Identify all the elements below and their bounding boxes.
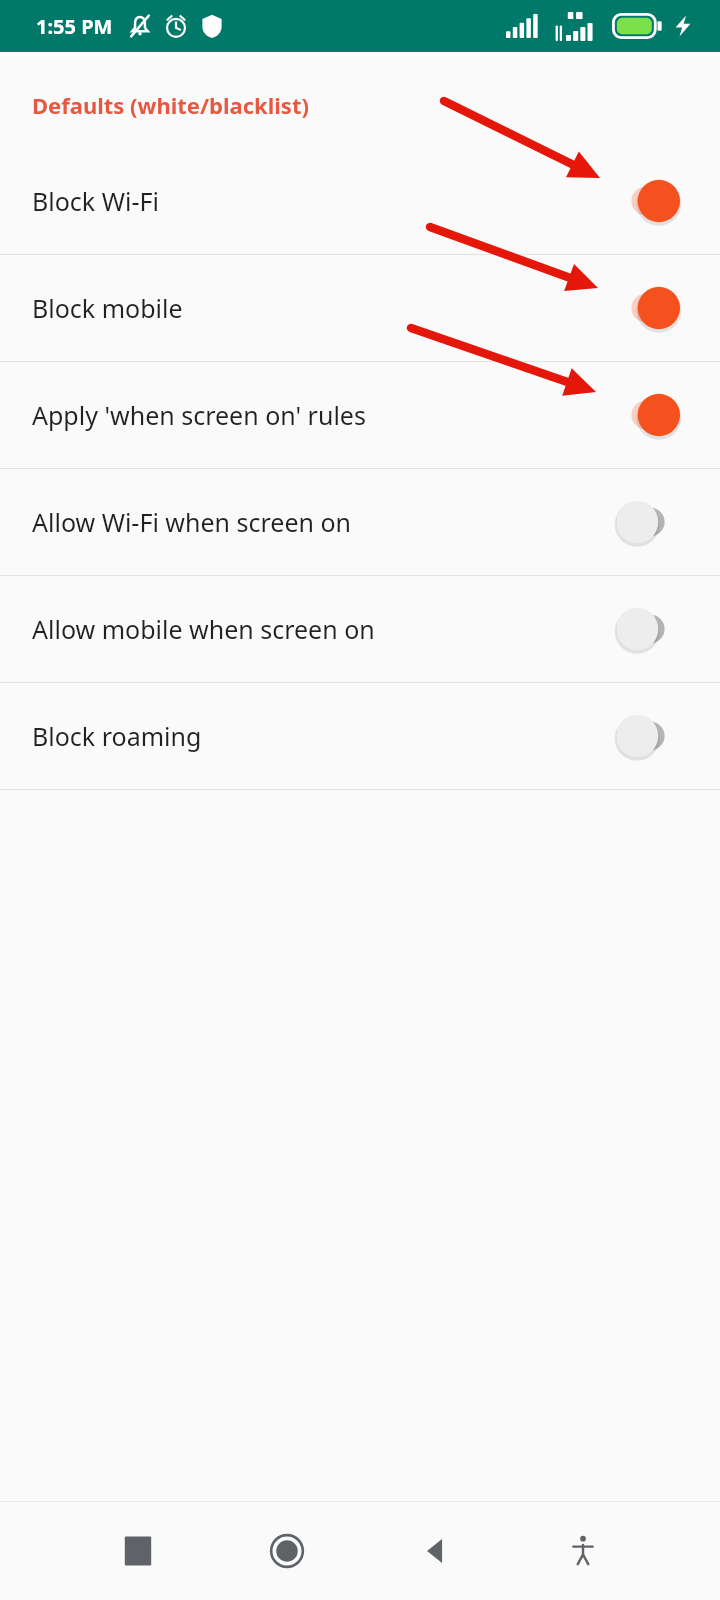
staticText: Apply 'when screen on' rules (32, 398, 616, 432)
button[interactable]: Home (247, 1511, 327, 1591)
staticText: Block mobile (32, 291, 616, 325)
staticText: Allow Wi-Fi when screen on (32, 505, 616, 539)
button[interactable]: Block Wi-Fi (0, 148, 720, 254)
staticText: Block roaming (32, 719, 616, 753)
button[interactable]: Allow Wi-Fi when screen on (0, 469, 720, 575)
other: Disabled (616, 713, 680, 759)
other: Enabled (616, 392, 680, 438)
button[interactable]: Block mobile (0, 255, 720, 361)
staticText: 1:55 PM (36, 13, 113, 40)
button[interactable]: Back (395, 1511, 475, 1591)
staticText: Defaults (white/blacklist) (32, 90, 309, 120)
button[interactable]: Apply 'when screen on' rules (0, 362, 720, 468)
button[interactable]: Accessibility (543, 1511, 623, 1591)
staticText: Allow mobile when screen on (32, 612, 616, 646)
staticText: Block Wi-Fi (32, 184, 616, 218)
other: Disabled (616, 606, 680, 652)
other: Enabled (616, 285, 680, 331)
other: Enabled (616, 178, 680, 224)
button[interactable]: Block roaming (0, 683, 720, 789)
other: Disabled (616, 499, 680, 545)
button[interactable]: Allow mobile when screen on (0, 576, 720, 682)
button[interactable]: Recent apps (98, 1511, 178, 1591)
